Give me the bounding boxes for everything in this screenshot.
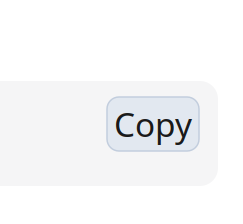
staticText: Copy	[114, 101, 192, 147]
button[interactable]: Copy	[107, 97, 199, 151]
